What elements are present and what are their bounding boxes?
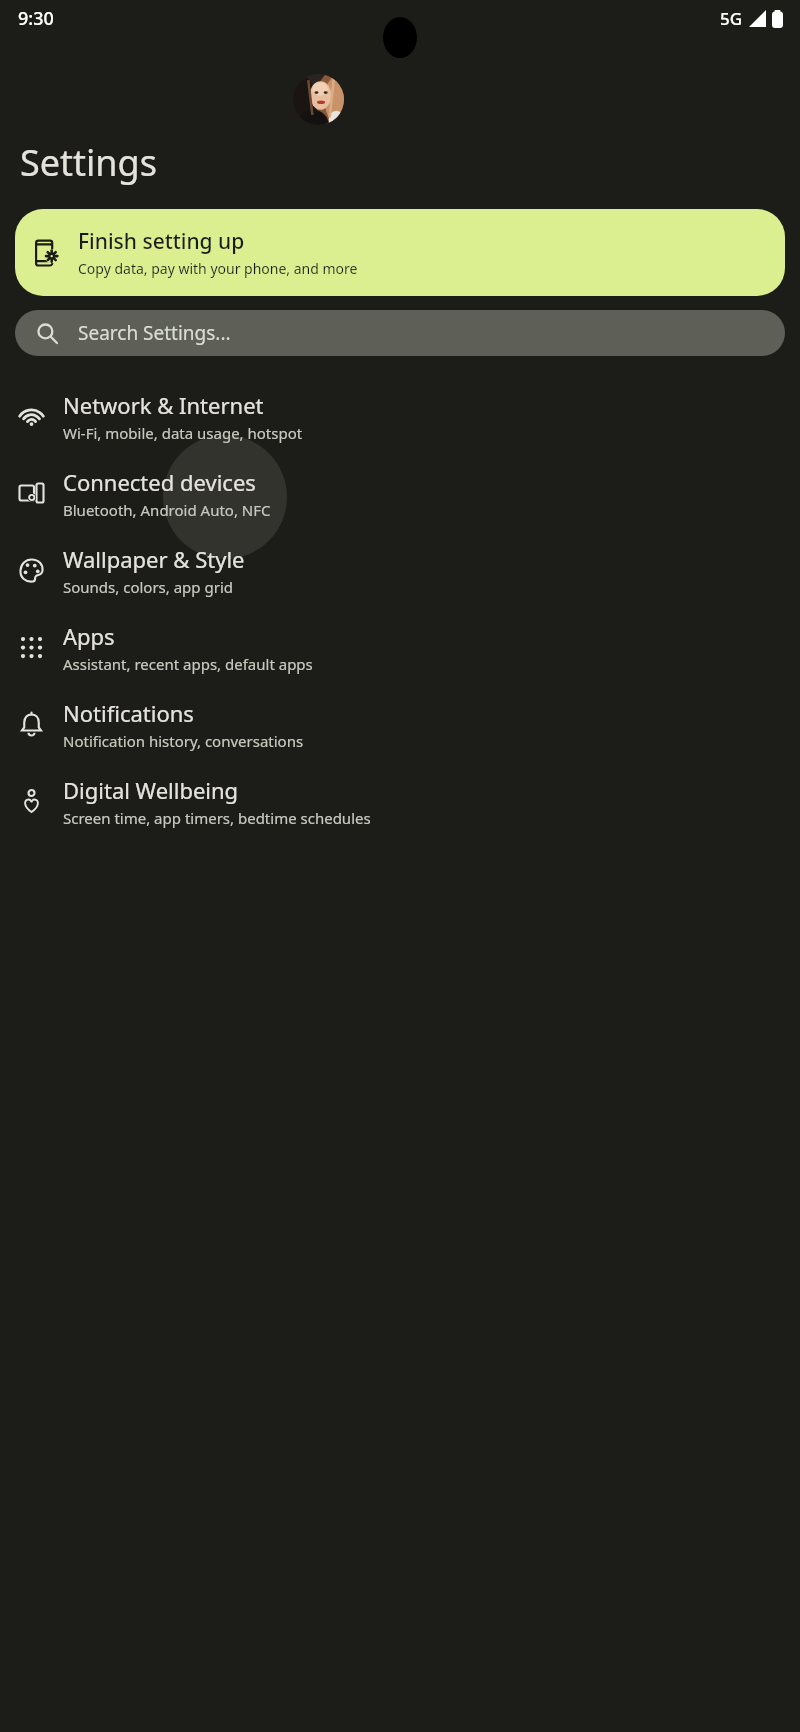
staticText: Settings — [20, 138, 157, 187]
staticText: Assistant, recent apps, default apps — [63, 654, 313, 674]
button[interactable]: Search Settings... — [15, 310, 785, 356]
staticText: Screen time, app timers, bedtime schedul… — [63, 808, 371, 828]
button[interactable]: Wallpaper & Style — [0, 532, 800, 609]
staticText: Digital Wellbeing — [63, 775, 239, 805]
button[interactable]: Account — [293, 74, 344, 125]
staticText: Search Settings... — [78, 320, 231, 346]
staticText: Copy data, pay with your phone, and more — [78, 259, 358, 278]
button[interactable]: Digital Wellbeing — [0, 763, 800, 840]
staticText: Network & Internet — [63, 390, 264, 420]
button[interactable]: Network & Internet — [0, 378, 800, 455]
staticText: Finish setting up — [78, 227, 245, 256]
staticText: 9:30 — [18, 6, 54, 31]
button[interactable]: Finish setting up — [15, 209, 785, 296]
staticText: 5G — [720, 7, 743, 30]
staticText: Connected devices — [63, 467, 256, 497]
button[interactable]: Apps — [0, 609, 800, 686]
button[interactable]: Connected devices — [0, 455, 800, 532]
staticText: Sounds, colors, app grid — [63, 577, 233, 597]
staticText: Wi-Fi, mobile, data usage, hotspot — [63, 423, 303, 443]
staticText: Notification history, conversations — [63, 731, 304, 751]
staticText: Bluetooth, Android Auto, NFC — [63, 500, 271, 520]
button[interactable]: Notifications — [0, 686, 800, 763]
staticText: Wallpaper & Style — [63, 544, 245, 574]
staticText: Notifications — [63, 698, 194, 728]
staticText: Apps — [63, 621, 115, 651]
